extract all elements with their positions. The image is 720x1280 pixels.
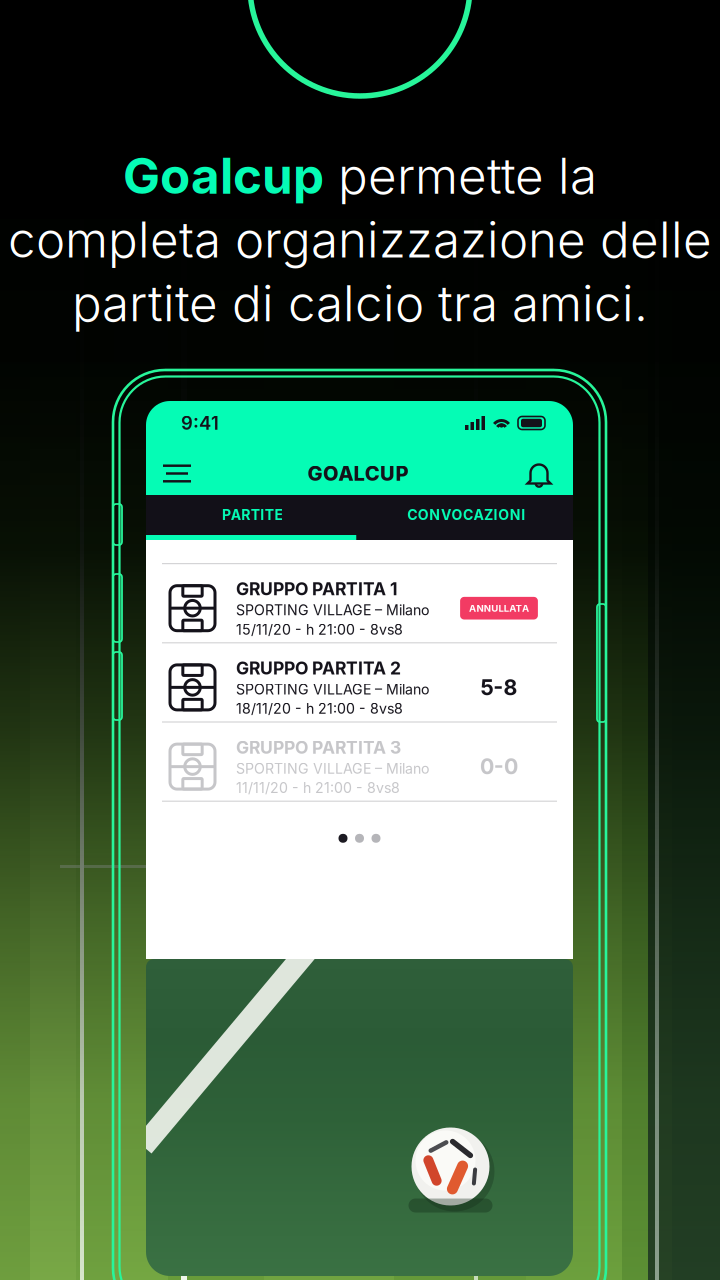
staticText: SPORTING VILLAGE – Milano bbox=[236, 760, 429, 777]
staticText: 5-8 bbox=[480, 674, 517, 700]
button[interactable]: Notifications bbox=[517, 449, 561, 497]
staticText: permette la bbox=[324, 146, 597, 206]
staticText: PARTITE bbox=[222, 506, 283, 523]
button[interactable]: Menu bbox=[155, 449, 199, 497]
staticText: Goalcup bbox=[123, 146, 324, 206]
staticText: 11/11/20 - h 21:00 - 8vs8 bbox=[236, 779, 400, 796]
staticText: GRUPPO PARTITA 1 bbox=[236, 578, 398, 599]
button[interactable]: PARTITE bbox=[146, 495, 359, 535]
staticText: GRUPPO PARTITA 3 bbox=[236, 737, 401, 758]
staticText: ANNULLATA bbox=[469, 602, 529, 614]
staticText: 0-0 bbox=[480, 754, 518, 779]
button[interactable]: GRUPPO PARTITA 2 bbox=[146, 643, 573, 721]
staticText: GOALCUP bbox=[308, 461, 408, 486]
staticText: partite di calcio tra amici. bbox=[72, 273, 648, 333]
button[interactable]: GRUPPO PARTITA 1 bbox=[146, 564, 573, 642]
staticText: 18/11/20 - h 21:00 - 8vs8 bbox=[236, 700, 403, 717]
staticText: GRUPPO PARTITA 2 bbox=[236, 657, 401, 679]
staticText: CONVOCAZIONI bbox=[407, 506, 525, 523]
button[interactable]: GRUPPO PARTITA 3 bbox=[146, 723, 573, 801]
staticText: completa organizzazione delle bbox=[8, 210, 712, 269]
staticText: 15/11/20 - h 21:00 - 8vs8 bbox=[236, 621, 403, 638]
staticText: SPORTING VILLAGE – Milano bbox=[236, 681, 429, 698]
button[interactable]: CONVOCAZIONI bbox=[359, 495, 573, 535]
staticText: SPORTING VILLAGE – Milano bbox=[236, 602, 429, 619]
staticText: 9:41 bbox=[181, 412, 219, 434]
